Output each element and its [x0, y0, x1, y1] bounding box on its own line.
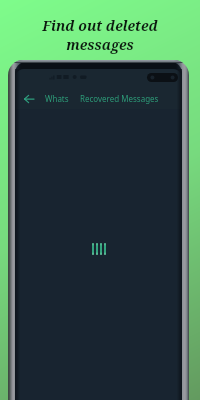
button[interactable]: Back — [19, 88, 39, 109]
staticText: Recovered Messages — [80, 93, 159, 104]
button[interactable]: Whats — [39, 89, 75, 108]
staticText: Find out deleted messages — [42, 16, 158, 54]
staticText: Whats — [45, 93, 69, 104]
button[interactable]: Recovered Messages — [75, 89, 164, 108]
